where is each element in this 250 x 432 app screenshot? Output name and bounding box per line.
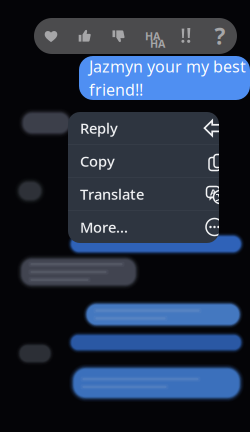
button[interactable]: Copy xyxy=(68,145,219,177)
button[interactable]: Love xyxy=(34,18,68,54)
button[interactable]: Question xyxy=(203,18,237,54)
staticText: A xyxy=(210,186,216,198)
button[interactable]: Translate xyxy=(68,178,219,210)
button[interactable]: Exclamation xyxy=(169,18,203,54)
button[interactable]: More... xyxy=(68,211,219,243)
staticText: ? xyxy=(214,21,225,51)
staticText: friend!! xyxy=(89,79,143,100)
button[interactable]: Haha xyxy=(135,18,169,54)
staticText: Jazmyn your my best xyxy=(89,56,246,77)
staticText: More... xyxy=(80,217,128,237)
button[interactable]: Like xyxy=(68,18,102,54)
staticText: HA xyxy=(150,36,165,51)
staticText: Reply xyxy=(80,118,118,138)
staticText: 文 xyxy=(215,191,224,203)
staticText: Copy xyxy=(80,151,115,171)
button[interactable]: Reply xyxy=(68,112,219,144)
staticText: HA xyxy=(145,29,160,43)
button[interactable]: Dislike xyxy=(102,18,135,54)
staticText: Translate xyxy=(80,184,144,204)
